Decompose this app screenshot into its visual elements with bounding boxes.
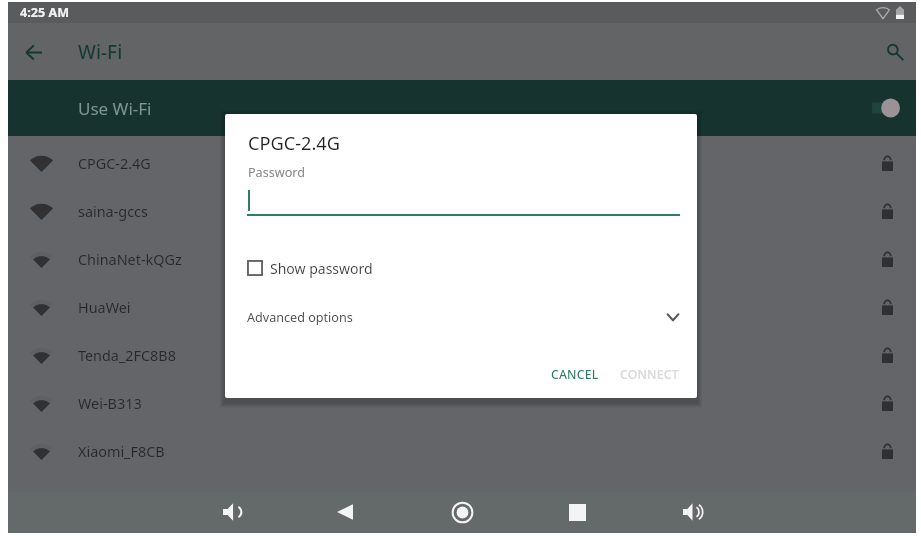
button[interactable]: Home xyxy=(445,495,479,529)
button[interactable]: Back xyxy=(328,495,362,529)
staticText: Use Wi-Fi xyxy=(78,97,152,120)
staticText: CPGC-2.4G xyxy=(78,154,151,174)
staticText: Xiaomi_F8CB xyxy=(78,442,165,462)
button[interactable]: Wei-B313 xyxy=(8,380,916,428)
button[interactable]: CONNECT xyxy=(608,357,691,392)
button[interactable]: CPGC-2.4G xyxy=(8,140,916,188)
button[interactable]: Tenda_2FC8B8 xyxy=(8,332,916,380)
button[interactable]: HuaWei xyxy=(8,284,916,332)
button[interactable]: Xiaomi_F8CB xyxy=(8,428,916,476)
staticText: Tenda_2FC8B8 xyxy=(78,346,176,366)
button[interactable]: Back xyxy=(12,31,54,73)
staticText: Password xyxy=(248,164,305,181)
staticText: ChinaNet-kQGz xyxy=(78,250,182,270)
staticText: saina-gccs xyxy=(78,202,148,222)
staticText: Wei-B313 xyxy=(78,394,142,414)
button[interactable]: Recents xyxy=(560,495,594,529)
staticText: CONNECT xyxy=(620,366,679,383)
staticText: CPGC-2.4G xyxy=(248,131,341,156)
staticText: HuaWei xyxy=(78,298,131,318)
button[interactable]: ChinaNet-kQGz xyxy=(8,236,916,284)
staticText: 4:25 AM xyxy=(20,4,70,21)
staticText: Show password xyxy=(270,259,373,278)
staticText: Wi-Fi xyxy=(78,39,123,65)
button[interactable]: Volume up xyxy=(674,495,708,529)
button[interactable]: CANCEL xyxy=(539,357,611,392)
button[interactable]: Show password xyxy=(247,257,373,279)
button[interactable]: Search xyxy=(874,31,916,73)
staticText: CANCEL xyxy=(551,366,599,383)
button[interactable]: saina-gccs xyxy=(8,188,916,236)
button[interactable]: Use Wi-Fi xyxy=(8,80,916,136)
button[interactable]: Volume down xyxy=(215,495,249,529)
button[interactable]: Advanced options xyxy=(247,304,697,330)
staticText: Advanced options xyxy=(247,309,353,326)
